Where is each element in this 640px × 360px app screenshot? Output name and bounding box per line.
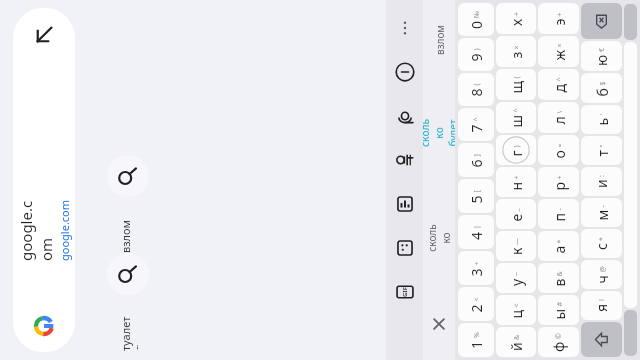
staticText: % — [472, 332, 482, 338]
staticText: 1 — [467, 340, 486, 349]
staticText: ^ — [554, 76, 564, 81]
button[interactable]: 2 — [458, 287, 494, 321]
button[interactable]: з — [496, 36, 536, 67]
staticText: © — [554, 333, 564, 339]
button[interactable]: х — [496, 3, 536, 34]
button[interactable]: н — [496, 167, 536, 197]
staticText: _ — [511, 207, 521, 211]
button[interactable]: г — [496, 135, 536, 165]
button[interactable]: л — [538, 102, 579, 133]
button[interactable]: ь — [581, 105, 622, 134]
staticText: — — [512, 238, 522, 245]
button[interactable]: 4 — [458, 215, 494, 249]
button[interactable]: Shift — [581, 322, 622, 357]
button[interactable]: у — [496, 263, 536, 293]
staticText: google.com — [16, 199, 56, 261]
button[interactable]: 1 — [458, 323, 494, 357]
button[interactable]: б — [581, 73, 622, 103]
button[interactable] — [624, 4, 637, 40]
button[interactable]: о — [538, 135, 579, 165]
button[interactable]: 9 — [458, 38, 494, 71]
button[interactable]: сколько будет — [423, 79, 455, 187]
staticText: - — [554, 207, 564, 210]
staticText: я — [592, 303, 611, 312]
button[interactable]: взлом на... — [88, 145, 168, 255]
button[interactable]: ф — [538, 327, 579, 357]
staticText: ^ — [511, 107, 521, 112]
staticText: ч — [592, 274, 611, 283]
staticText: & — [512, 334, 522, 340]
button[interactable]: щ — [496, 69, 536, 100]
staticText: э — [549, 18, 568, 25]
button[interactable]: т — [581, 136, 622, 165]
staticText: взлом на... — [118, 201, 138, 253]
button[interactable]: 5 — [458, 179, 494, 213]
button[interactable]: с — [581, 229, 622, 258]
button[interactable]: Voice input — [391, 102, 419, 130]
button[interactable]: Back — [13, 8, 75, 352]
button[interactable]: ц — [496, 295, 536, 325]
button[interactable]: э — [538, 3, 579, 34]
button[interactable]: Back — [31, 22, 57, 48]
button[interactable]: 0 — [458, 3, 494, 36]
staticText: × — [554, 42, 564, 47]
button[interactable]: взлом — [423, 0, 455, 79]
staticText: 8 — [466, 87, 485, 96]
button[interactable]: п — [538, 199, 579, 229]
staticText: ы — [549, 308, 568, 319]
staticText: < — [511, 302, 521, 307]
button[interactable]: к — [496, 231, 536, 261]
staticText: 2 — [466, 303, 485, 312]
button[interactable]: Poll — [391, 190, 419, 218]
button[interactable]: е — [496, 199, 536, 229]
button[interactable]: ы — [538, 295, 579, 325]
button[interactable]: туалет fi... — [88, 243, 168, 353]
staticText: б — [592, 87, 611, 96]
staticText: ь — [592, 117, 611, 125]
staticText: р — [549, 181, 568, 190]
staticText: ( — [511, 75, 521, 78]
button[interactable]: й — [496, 327, 536, 357]
staticText: ) — [511, 144, 521, 147]
button[interactable]: а — [538, 231, 579, 261]
button[interactable]: Emoji — [391, 58, 419, 86]
staticText: е — [506, 213, 525, 221]
button[interactable]: ч — [581, 260, 622, 289]
button[interactable]: 8 — [458, 73, 494, 106]
staticText: с — [592, 243, 611, 250]
staticText: № — [472, 10, 482, 18]
button[interactable]: Close suggestions — [423, 288, 455, 360]
staticText: @ — [597, 265, 607, 272]
button[interactable]: в — [538, 263, 579, 293]
button[interactable]: 6 — [458, 143, 494, 177]
button[interactable]: ш — [496, 102, 536, 133]
button[interactable]: More options — [391, 14, 419, 42]
button[interactable]: 7 — [458, 108, 494, 141]
staticText: сколько будет — [418, 117, 460, 149]
button[interactable] — [624, 310, 637, 356]
button[interactable]: и — [581, 167, 622, 196]
staticText: ф — [549, 341, 568, 352]
staticText: € — [597, 47, 607, 52]
button[interactable]: я — [581, 291, 622, 320]
button[interactable]: д — [538, 69, 579, 100]
button[interactable]: GIF — [391, 278, 419, 306]
button[interactable]: м — [581, 198, 622, 227]
button[interactable]: р — [538, 167, 579, 197]
staticText: туалет fi... — [118, 299, 138, 351]
button[interactable]: Backspace — [581, 3, 622, 39]
staticText: ( — [471, 82, 481, 85]
button[interactable]: сколько — [423, 187, 455, 288]
button[interactable]: ю — [581, 41, 622, 71]
staticText: 4 — [467, 231, 486, 240]
button[interactable]: ж — [538, 36, 579, 67]
staticText: - — [597, 204, 607, 207]
button[interactable]: 3 — [458, 251, 494, 285]
button[interactable]: Sticker — [391, 234, 419, 262]
staticText: google.com — [57, 199, 72, 261]
button[interactable]: Translate — [391, 146, 419, 174]
staticText: 5 — [466, 194, 485, 203]
staticText: ж — [549, 49, 568, 60]
staticText: & — [554, 270, 564, 276]
